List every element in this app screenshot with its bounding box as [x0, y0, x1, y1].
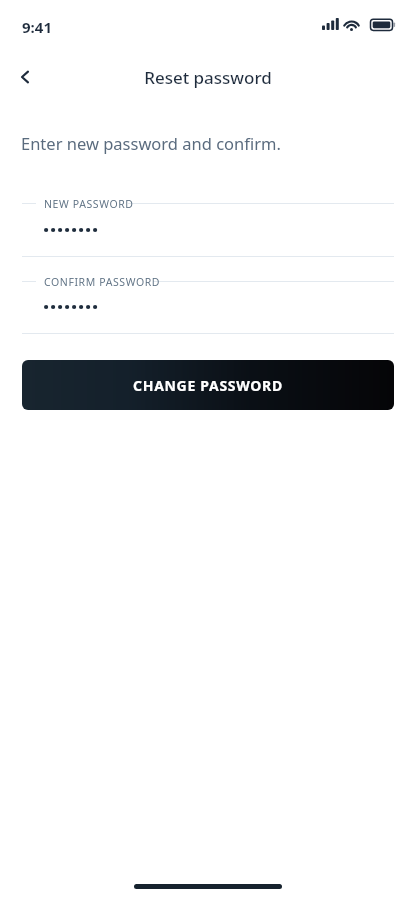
- button[interactable]: [0, 189, 416, 258]
- staticText: NEW PASSWORD: [44, 197, 134, 211]
- button[interactable]: CHANGE PASSWORD: [22, 360, 394, 410]
- staticText: 9:41: [22, 17, 52, 37]
- button[interactable]: [0, 267, 416, 335]
- staticText: Enter new password and confirm.: [21, 132, 281, 154]
- button[interactable]: Back: [6, 57, 46, 97]
- staticText: CONFIRM PASSWORD: [44, 275, 161, 289]
- staticText: Reset password: [144, 66, 272, 89]
- staticText: CHANGE PASSWORD: [133, 376, 283, 395]
